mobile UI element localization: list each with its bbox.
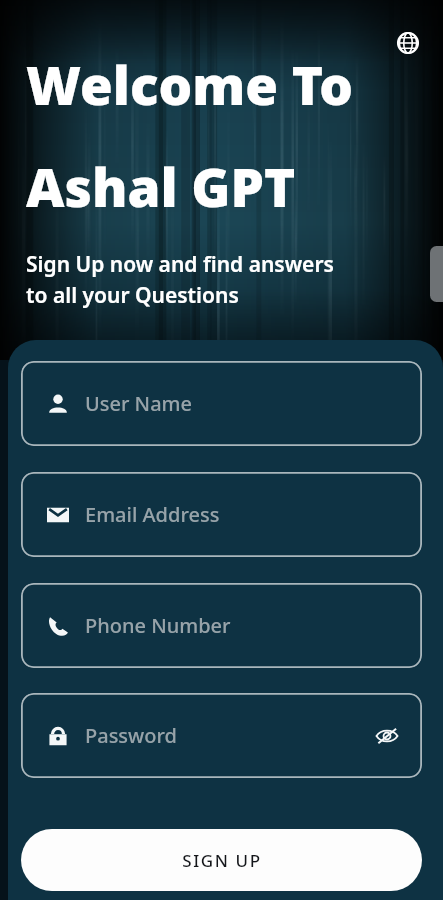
staticText: Password xyxy=(85,722,177,749)
staticText: Email Address xyxy=(85,501,220,528)
staticText: Ashal GPT xyxy=(26,150,296,222)
button[interactable]: User Name xyxy=(21,361,422,446)
button[interactable]: Toggle password visibility xyxy=(372,721,402,751)
button[interactable]: Phone Number xyxy=(21,583,422,668)
button[interactable]: Change language xyxy=(393,28,423,58)
staticText: Welcome To xyxy=(26,48,354,120)
button[interactable]: Email Address xyxy=(21,472,422,557)
staticText: User Name xyxy=(85,390,192,417)
button[interactable]: Password xyxy=(21,693,422,778)
staticText: Sign Up now and find answers to all your… xyxy=(26,250,334,309)
button[interactable]: SIGN UP xyxy=(21,829,422,891)
staticText: SIGN UP xyxy=(182,849,262,872)
staticText: Phone Number xyxy=(85,612,231,639)
